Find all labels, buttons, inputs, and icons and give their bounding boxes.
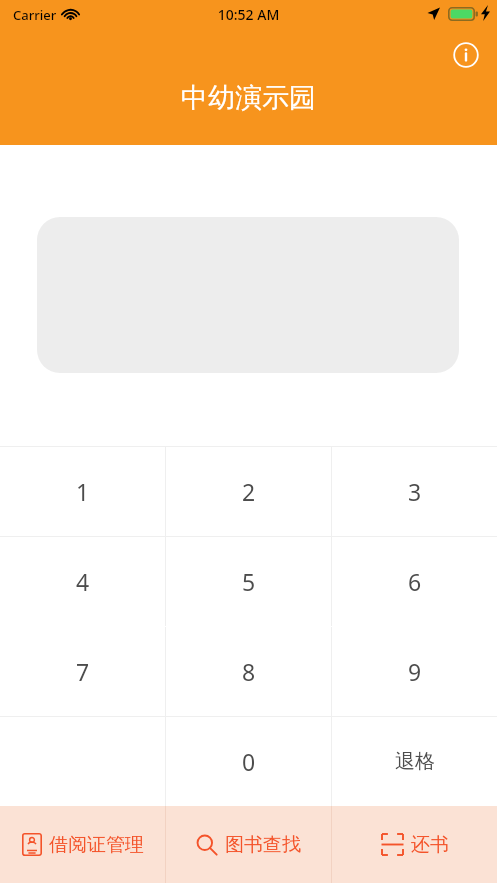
staticText: 6	[408, 566, 422, 597]
button[interactable]: 6	[332, 537, 497, 626]
button[interactable]: 9	[332, 627, 497, 716]
button[interactable]: 借阅证管理	[0, 806, 165, 883]
button[interactable]: 1	[0, 447, 165, 536]
staticText: 8	[242, 656, 256, 687]
staticText: Carrier	[13, 6, 57, 24]
button[interactable]: 3	[332, 447, 497, 536]
staticText: 9	[408, 656, 422, 687]
staticText: 4	[76, 566, 90, 597]
staticText: 还书	[411, 833, 449, 857]
button[interactable]: 0	[166, 717, 331, 806]
staticText: 10:52 AM	[0, 5, 497, 24]
button[interactable]: Info	[452, 41, 480, 69]
button[interactable]: 2	[166, 447, 331, 536]
button[interactable]: 5	[166, 537, 331, 626]
staticText: 0	[242, 746, 256, 777]
button[interactable]: 8	[166, 627, 331, 716]
button[interactable]: 还书	[332, 806, 497, 883]
staticText: 7	[76, 656, 90, 687]
button[interactable]: 4	[0, 537, 165, 626]
staticText: 5	[242, 566, 256, 597]
staticText: 中幼演示园	[0, 81, 497, 115]
staticText: 退格	[395, 749, 435, 774]
staticText: 借阅证管理	[49, 833, 144, 857]
button[interactable]: 图书查找	[166, 806, 331, 883]
staticText: 1	[76, 476, 90, 507]
staticText: 图书查找	[225, 833, 301, 857]
staticText: 2	[242, 476, 256, 507]
button[interactable]: 7	[0, 627, 165, 716]
staticText: 3	[408, 476, 422, 507]
button[interactable]: 退格	[332, 717, 497, 806]
